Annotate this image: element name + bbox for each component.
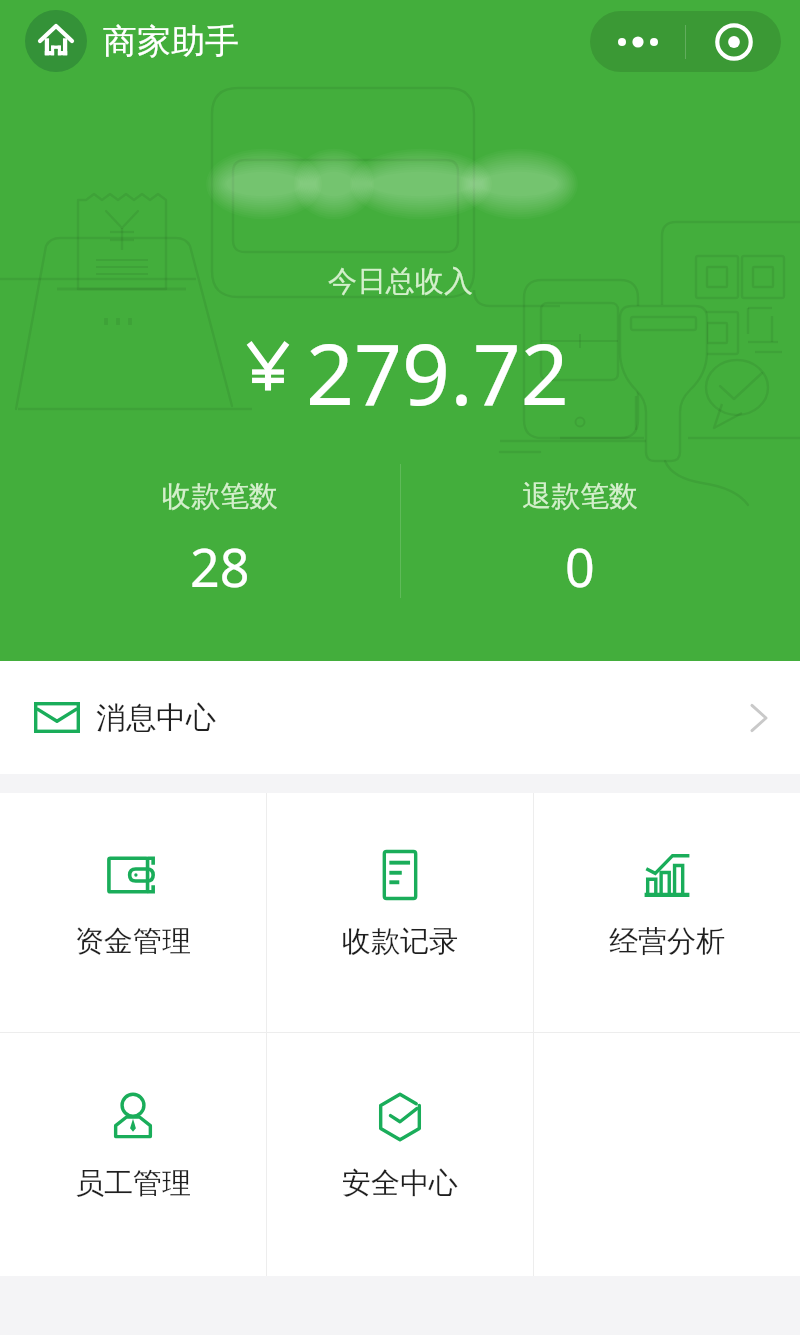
button[interactable]: 收款记录: [267, 793, 533, 1032]
staticText: 退款笔数: [522, 478, 638, 515]
button[interactable]: More options: [590, 11, 685, 72]
staticText: 资金管理: [75, 923, 191, 960]
staticText: 员工管理: [75, 1165, 191, 1202]
button[interactable]: 消息中心: [0, 661, 800, 774]
button[interactable]: Close: [686, 11, 781, 72]
staticText: 279.72: [306, 315, 569, 429]
button[interactable]: 经营分析: [534, 793, 800, 1032]
staticText: 收款笔数: [162, 478, 278, 515]
staticText: 今日总收入: [328, 263, 473, 300]
staticText: 收款记录: [342, 923, 458, 960]
staticText: 消息中心: [96, 699, 216, 737]
staticText: 0: [565, 531, 595, 602]
button[interactable]: 安全中心: [267, 1033, 533, 1276]
button[interactable]: 员工管理: [0, 1033, 266, 1276]
staticText: 经营分析: [609, 923, 725, 960]
staticText: 28: [190, 531, 250, 602]
button[interactable]: 退款笔数: [480, 464, 680, 602]
button[interactable]: Home: [25, 10, 87, 72]
staticText: 安全中心: [342, 1165, 458, 1202]
staticText: 商家助手: [103, 20, 239, 63]
button[interactable]: 收款笔数: [120, 464, 320, 602]
button[interactable]: 资金管理: [0, 793, 266, 1032]
